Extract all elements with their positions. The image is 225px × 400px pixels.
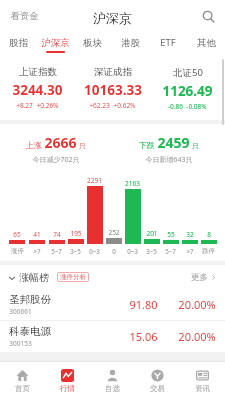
button[interactable]: 上涨 <box>0 133 112 165</box>
staticText: 上涨 <box>26 140 42 150</box>
staticText: 300153 <box>9 339 32 348</box>
staticText: 10163.33 <box>84 81 142 99</box>
staticText: 195 <box>70 229 82 238</box>
staticText: 3~5 <box>70 247 81 255</box>
staticText: 今日减少702只 <box>32 155 80 165</box>
staticText: 1126.49 <box>162 82 213 100</box>
staticText: 上证指数 <box>19 66 57 78</box>
button[interactable]: 74 <box>47 230 66 255</box>
staticText: 沪深京 <box>41 37 70 49</box>
staticText: 交易 <box>150 384 165 393</box>
staticText: ETF <box>160 36 176 49</box>
staticText: 15.06 <box>129 329 158 344</box>
staticText: 北证50 <box>173 66 203 79</box>
staticText: 科泰电源 <box>9 325 51 338</box>
button[interactable]: 2291 <box>85 176 104 255</box>
button[interactable]: 下跌 <box>112 133 225 165</box>
staticText: 下跌 <box>139 140 155 150</box>
staticText: 涨停分析 <box>60 273 86 281</box>
staticText: 2291 <box>87 176 102 185</box>
staticText: 板块 <box>83 37 102 49</box>
button[interactable]: 8 <box>199 230 218 255</box>
button[interactable]: 沪深京 <box>37 32 74 57</box>
staticText: 2163 <box>125 179 140 188</box>
staticText: 0~3 <box>127 247 138 255</box>
staticText: 5~7 <box>51 247 62 255</box>
staticText: -0.08% <box>186 102 207 111</box>
button[interactable]: 41 <box>27 230 47 255</box>
staticText: 涨幅榜 <box>19 271 49 284</box>
staticText: +0.26% <box>36 101 59 110</box>
staticText: 沪深京 <box>93 10 132 26</box>
staticText: 跌停 <box>202 247 215 255</box>
staticText: 2459 <box>157 133 190 152</box>
staticText: 今日新增643只 <box>145 155 193 165</box>
staticText: 91.80 <box>129 297 158 312</box>
button[interactable]: 更多 <box>191 272 217 283</box>
staticText: -0.86 <box>168 102 183 111</box>
staticText: 首页 <box>15 384 30 393</box>
staticText: 32 <box>186 230 194 239</box>
staticText: 252 <box>108 228 120 237</box>
staticText: 圣邦股份 <box>9 293 51 306</box>
button[interactable]: 行情 <box>45 362 90 400</box>
staticText: 300661 <box>9 307 32 316</box>
staticText: 涨停 <box>11 247 24 255</box>
staticText: 8 <box>207 230 211 239</box>
staticText: 只 <box>192 141 199 150</box>
button[interactable]: 板块 <box>74 32 111 57</box>
staticText: 0~3 <box>89 247 100 255</box>
staticText: 3~5 <box>146 247 157 255</box>
staticText: 行情 <box>60 384 75 393</box>
button[interactable]: 资讯 <box>180 362 225 400</box>
staticText: 深证成指 <box>94 66 132 78</box>
staticText: 资讯 <box>195 384 210 393</box>
staticText: 自选 <box>105 384 120 393</box>
staticText: 201 <box>146 229 158 238</box>
button[interactable]: Search <box>197 5 219 27</box>
staticText: 5~7 <box>165 247 176 255</box>
staticText: 20.00% <box>178 297 216 312</box>
staticText: 74 <box>53 230 61 239</box>
button[interactable]: 195 <box>66 229 85 255</box>
button[interactable]: 201 <box>142 229 161 255</box>
button[interactable]: 55 <box>161 230 180 255</box>
button[interactable]: 科泰电源 <box>0 321 225 352</box>
staticText: +8.27 <box>16 101 33 110</box>
staticText: 0 <box>112 247 116 255</box>
staticText: 3244.30 <box>12 81 63 99</box>
staticText: 20.00% <box>178 329 216 344</box>
staticText: 股指 <box>9 37 28 49</box>
button[interactable]: 其他 <box>187 32 225 57</box>
staticText: 其他 <box>197 37 216 49</box>
staticText: 55 <box>167 230 175 239</box>
staticText: 港股 <box>121 37 140 49</box>
staticText: 只 <box>79 141 86 150</box>
button[interactable]: 首页 <box>0 362 45 400</box>
staticText: 更多 <box>191 272 208 283</box>
button[interactable]: 圣邦股份 <box>0 289 225 320</box>
button[interactable]: 65 <box>7 230 27 255</box>
button[interactable]: 看资金 <box>0 6 45 26</box>
button[interactable]: 港股 <box>111 32 149 57</box>
button[interactable]: 上证指数 <box>0 64 75 112</box>
button[interactable]: 股指 <box>0 32 37 57</box>
button[interactable]: ETF <box>149 32 187 57</box>
staticText: 65 <box>13 230 21 239</box>
button[interactable]: 32 <box>180 230 199 255</box>
staticText: 2666 <box>44 133 77 152</box>
staticText: +0.62% <box>113 101 136 110</box>
button[interactable]: 涨幅榜 <box>8 271 49 284</box>
staticText: >7 <box>186 247 194 255</box>
button[interactable]: 252 <box>104 228 123 255</box>
button[interactable]: 交易 <box>135 362 180 400</box>
staticText: >7 <box>33 247 41 255</box>
staticText: +62.23 <box>89 101 110 110</box>
staticText: 41 <box>33 230 41 239</box>
button[interactable]: 2163 <box>123 179 142 255</box>
button[interactable]: 自选 <box>90 362 135 400</box>
button[interactable]: 深证成指 <box>75 64 150 112</box>
button[interactable]: 涨停分析 <box>57 272 89 282</box>
button[interactable]: 北证50 <box>150 64 225 113</box>
